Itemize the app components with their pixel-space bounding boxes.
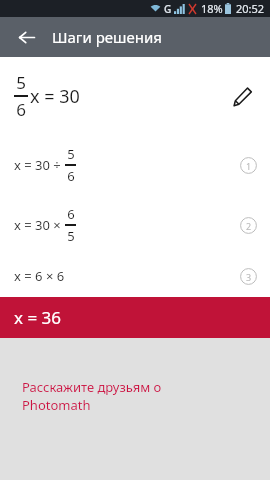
staticText: x = 30 <box>30 84 80 109</box>
button[interactable]: Расскажите друзьям о Photomath <box>0 338 270 480</box>
staticText: x = 30 × <box>14 216 65 234</box>
button[interactable]: x = 30 × <box>0 195 270 255</box>
staticText: 5 <box>67 227 75 245</box>
button[interactable]: Edit <box>227 81 257 111</box>
staticText: 5 <box>67 145 75 163</box>
staticText: 20:52 <box>236 1 265 16</box>
staticText: 6 <box>67 205 75 223</box>
staticText: x = 30 ÷ <box>14 156 65 174</box>
staticText: G <box>164 2 172 16</box>
button[interactable]: Back <box>12 23 40 51</box>
staticText: 5 <box>16 71 26 94</box>
staticText: Расскажите друзьям о Photomath <box>22 378 162 414</box>
staticText: 3 <box>246 271 252 283</box>
staticText: 1 <box>246 160 252 172</box>
staticText: Шаги решения <box>52 27 162 47</box>
button[interactable]: x = 6 × 6 <box>0 255 270 297</box>
button[interactable]: x = 36 <box>0 297 270 338</box>
staticText: x = 36 <box>14 306 62 329</box>
staticText: 6 <box>16 98 26 121</box>
staticText: x = 6 × 6 <box>14 267 65 285</box>
button[interactable]: x = 30 ÷ <box>0 135 270 195</box>
staticText: 2 <box>246 220 252 232</box>
staticText: 18% <box>201 1 223 16</box>
staticText: 6 <box>67 167 75 185</box>
